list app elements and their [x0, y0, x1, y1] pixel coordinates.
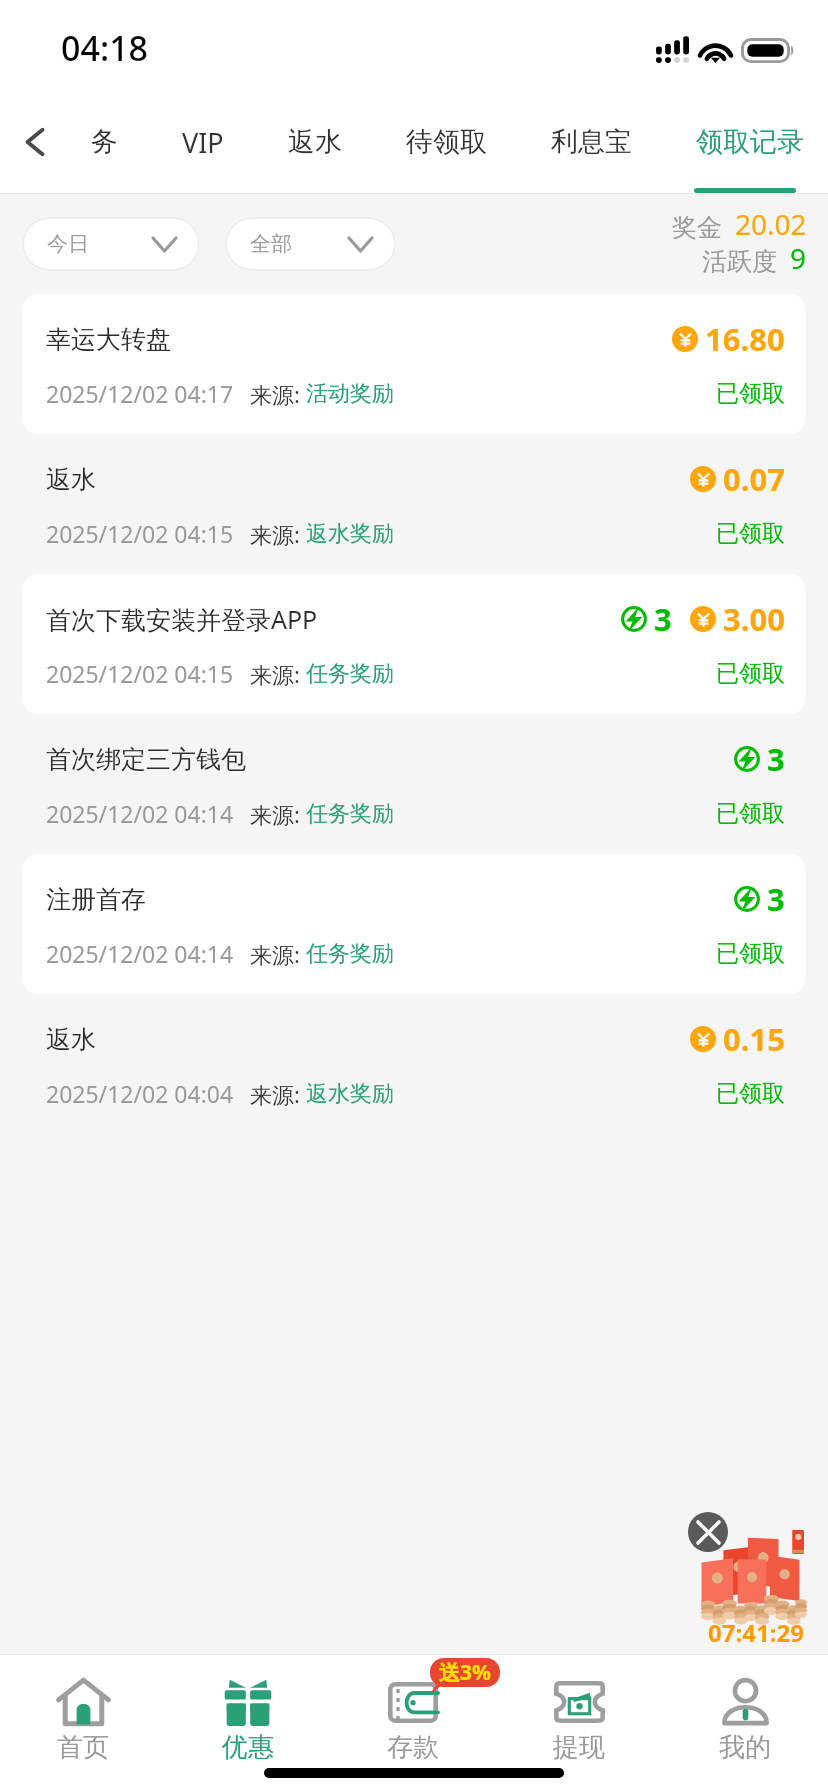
- staticText: 3.00: [723, 598, 785, 640]
- staticText: 优惠: [222, 1731, 274, 1764]
- button[interactable]: 返水: [22, 434, 806, 574]
- staticText: 我的: [719, 1731, 771, 1764]
- staticText: 活跃度: [702, 246, 777, 277]
- staticText: 注册首存: [46, 884, 146, 915]
- staticText: 来源:: [250, 519, 306, 549]
- staticText: 3: [654, 598, 672, 640]
- button[interactable]: VIP: [150, 90, 256, 194]
- staticText: 全部: [250, 231, 292, 257]
- staticText: 已领取: [716, 799, 785, 828]
- staticText: 任务奖励: [306, 940, 394, 968]
- staticText: 领取记录: [696, 125, 804, 159]
- staticText: 返水奖励: [306, 520, 394, 548]
- button[interactable]: Promotion: [702, 1530, 804, 1622]
- staticText: 任务奖励: [306, 800, 394, 828]
- button[interactable]: 存款: [330, 1654, 496, 1792]
- staticText: 3: [767, 738, 785, 780]
- staticText: 0.15: [723, 1018, 785, 1060]
- button[interactable]: 提现: [496, 1654, 662, 1792]
- staticText: 20.02: [735, 205, 807, 243]
- staticText: 来源:: [250, 379, 306, 409]
- staticText: 今日: [47, 231, 89, 257]
- staticText: 利息宝: [551, 125, 632, 159]
- button[interactable]: 返水: [256, 90, 374, 194]
- button[interactable]: 待领取: [374, 90, 519, 194]
- staticText: 来源:: [250, 659, 306, 689]
- staticText: 务: [91, 125, 118, 159]
- button[interactable]: 首页: [0, 1654, 165, 1792]
- button[interactable]: 领取记录: [664, 90, 828, 194]
- staticText: 已领取: [716, 379, 785, 408]
- staticText: 待领取: [406, 125, 487, 159]
- staticText: 9: [790, 239, 807, 277]
- button[interactable]: 幸运大转盘: [22, 294, 806, 434]
- staticText: 0.07: [723, 458, 785, 500]
- button[interactable]: 返水: [22, 994, 806, 1134]
- staticText: 已领取: [716, 659, 785, 688]
- staticText: 07:41:29: [708, 1616, 804, 1649]
- staticText: 已领取: [716, 519, 785, 548]
- staticText: VIP: [182, 124, 224, 161]
- staticText: 2025/12/02 04:14: [46, 938, 234, 969]
- button[interactable]: 全部: [225, 217, 396, 271]
- staticText: 返水: [46, 464, 96, 495]
- staticText: 2025/12/02 04:04: [46, 1078, 234, 1109]
- button[interactable]: 首次绑定三方钱包: [22, 714, 806, 854]
- staticText: 3: [767, 878, 785, 920]
- staticText: 任务奖励: [306, 660, 394, 688]
- staticText: 首次绑定三方钱包: [46, 744, 246, 775]
- staticText: 活动奖励: [306, 380, 394, 408]
- button[interactable]: Back: [0, 90, 70, 194]
- staticText: 返水: [288, 125, 342, 159]
- staticText: 提现: [553, 1731, 605, 1764]
- staticText: 来源:: [250, 939, 306, 969]
- button[interactable]: 优惠: [165, 1654, 330, 1792]
- button[interactable]: 注册首存: [22, 854, 806, 994]
- staticText: 2025/12/02 04:15: [46, 658, 234, 689]
- staticText: 来源:: [250, 1079, 306, 1109]
- staticText: 已领取: [716, 939, 785, 968]
- staticText: 幸运大转盘: [46, 324, 171, 355]
- staticText: 送3%: [439, 1658, 491, 1687]
- staticText: 2025/12/02 04:17: [46, 378, 234, 409]
- staticText: 来源:: [250, 799, 306, 829]
- staticText: 首次下载安装并登录APP: [46, 602, 318, 636]
- staticText: 返水奖励: [306, 1080, 394, 1108]
- button[interactable]: 今日: [22, 217, 200, 271]
- staticText: 2025/12/02 04:14: [46, 798, 234, 829]
- staticText: 16.80: [705, 318, 785, 360]
- staticText: 已领取: [716, 1079, 785, 1108]
- staticText: 奖金: [672, 212, 722, 243]
- button[interactable]: 利息宝: [519, 90, 664, 194]
- staticText: 返水: [46, 1024, 96, 1055]
- button[interactable]: 我的: [662, 1654, 828, 1792]
- button[interactable]: 务: [59, 90, 150, 194]
- staticText: 04:18: [61, 25, 149, 71]
- button[interactable]: Close: [688, 1512, 728, 1552]
- staticText: 2025/12/02 04:15: [46, 518, 234, 549]
- button[interactable]: 首次下载安装并登录APP: [22, 574, 806, 714]
- staticText: 存款: [387, 1731, 439, 1764]
- staticText: 首页: [57, 1731, 109, 1764]
